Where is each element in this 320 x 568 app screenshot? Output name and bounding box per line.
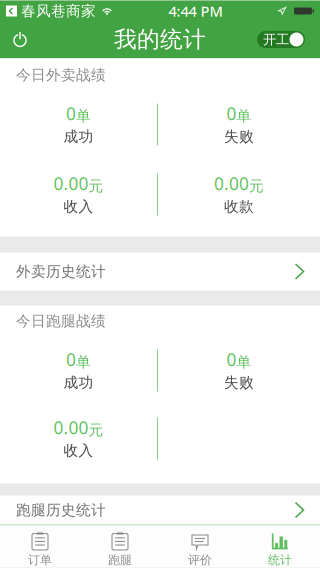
staticText: 评价 xyxy=(188,553,212,567)
button[interactable]: 统计 xyxy=(240,524,320,568)
staticText: 元 xyxy=(88,421,103,439)
staticText: 4:44 PM xyxy=(168,1,222,21)
button[interactable]: 评价 xyxy=(160,524,240,568)
staticText: 今日跑腿战绩 xyxy=(16,312,106,330)
staticText: 外卖历史统计 xyxy=(16,262,106,280)
button[interactable]: 收工 xyxy=(0,21,40,58)
staticText: 单 xyxy=(236,107,251,125)
staticText: 成功 xyxy=(63,373,93,391)
staticText: 统计 xyxy=(268,553,292,567)
staticText: 0.00 xyxy=(53,416,88,439)
staticText: 收入 xyxy=(63,441,93,459)
staticText: 0.00 xyxy=(214,172,249,195)
staticText: 单 xyxy=(76,353,91,371)
button[interactable]: 订单 xyxy=(0,524,80,568)
staticText: 0 xyxy=(226,102,236,125)
staticText: 开工 xyxy=(263,31,289,48)
staticText: 0.00 xyxy=(53,172,88,195)
staticText: 我的统计 xyxy=(114,26,206,53)
staticText: 元 xyxy=(88,177,103,195)
staticText: 单 xyxy=(236,353,251,371)
staticText: 今日外卖战绩 xyxy=(16,66,106,84)
staticText: 0 xyxy=(66,102,76,125)
staticText: 失败 xyxy=(224,373,254,391)
staticText: 单 xyxy=(76,107,91,125)
staticText: 跑腿 xyxy=(108,553,132,567)
staticText: 订单 xyxy=(28,553,52,567)
staticText: 元 xyxy=(249,177,264,195)
staticText: 0 xyxy=(226,348,236,371)
button[interactable]: 外卖历史统计 xyxy=(0,252,320,290)
button[interactable]: 跑腿历史统计 xyxy=(0,495,320,524)
staticText: 收款 xyxy=(224,197,254,215)
button[interactable]: 开工 xyxy=(257,21,320,58)
button[interactable]: 跑腿 xyxy=(80,524,160,568)
staticText: 跑腿历史统计 xyxy=(16,501,106,519)
staticText: 0 xyxy=(66,348,76,371)
staticText: 成功 xyxy=(63,127,93,145)
staticText: 失败 xyxy=(224,127,254,145)
staticText: 春风巷商家 xyxy=(17,2,96,20)
staticText: 收入 xyxy=(63,197,93,215)
